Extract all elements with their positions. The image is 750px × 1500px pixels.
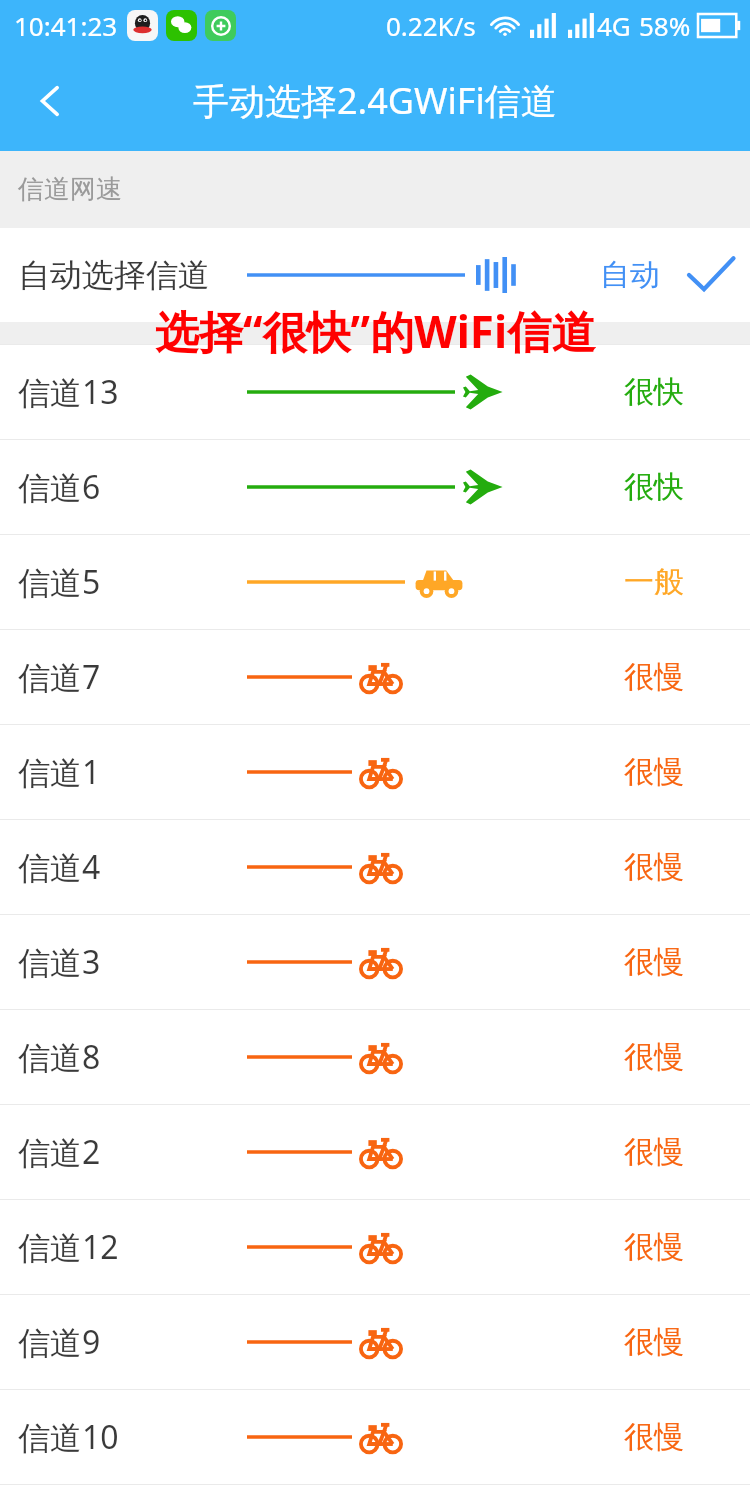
button[interactable]: 自动选择信道 bbox=[0, 228, 750, 322]
staticText: 信道3 bbox=[18, 940, 101, 984]
staticText: 很慢 bbox=[624, 1418, 684, 1456]
staticText: 很慢 bbox=[624, 658, 684, 696]
staticText: 很慢 bbox=[624, 753, 684, 791]
staticText: 很慢 bbox=[624, 1323, 684, 1361]
staticText: 4G bbox=[597, 8, 631, 43]
button[interactable]: 信道3 bbox=[0, 915, 750, 1009]
button[interactable]: 信道7 bbox=[0, 630, 750, 724]
button[interactable]: 信道8 bbox=[0, 1010, 750, 1104]
staticText: 10:41:23 bbox=[14, 8, 118, 43]
staticText: 自动选择信道 bbox=[18, 255, 210, 295]
button[interactable]: 信道2 bbox=[0, 1105, 750, 1199]
staticText: 很快 bbox=[624, 468, 684, 506]
staticText: 信道4 bbox=[18, 845, 101, 889]
button[interactable]: 信道13 bbox=[0, 345, 750, 439]
staticText: 信道12 bbox=[18, 1225, 119, 1269]
button[interactable]: 信道4 bbox=[0, 820, 750, 914]
staticText: 很慢 bbox=[624, 848, 684, 886]
button[interactable]: 信道10 bbox=[0, 1390, 750, 1484]
staticText: 选择“很快”的WiFi信道 bbox=[155, 301, 596, 359]
button[interactable]: Back bbox=[0, 50, 100, 151]
staticText: 信道13 bbox=[18, 370, 119, 414]
staticText: 很慢 bbox=[624, 1133, 684, 1171]
staticText: 58% bbox=[639, 8, 691, 43]
staticText: 信道10 bbox=[18, 1415, 119, 1459]
staticText: 信道2 bbox=[18, 1130, 101, 1174]
staticText: 很慢 bbox=[624, 1228, 684, 1266]
staticText: 信道5 bbox=[18, 560, 101, 604]
staticText: 一般 bbox=[624, 563, 684, 601]
staticText: 很快 bbox=[624, 373, 684, 411]
button[interactable]: 信道1 bbox=[0, 725, 750, 819]
staticText: 信道1 bbox=[18, 750, 101, 794]
staticText: 手动选择2.4GWiFi信道 bbox=[193, 76, 557, 125]
button[interactable]: 信道9 bbox=[0, 1295, 750, 1389]
button[interactable]: 信道12 bbox=[0, 1200, 750, 1294]
staticText: 0.22K/s bbox=[386, 8, 476, 43]
staticText: 信道网速 bbox=[18, 173, 122, 206]
button[interactable]: 信道5 bbox=[0, 535, 750, 629]
staticText: 自动 bbox=[600, 256, 660, 294]
button[interactable]: 信道6 bbox=[0, 440, 750, 534]
staticText: 信道7 bbox=[18, 655, 101, 699]
staticText: 很慢 bbox=[624, 943, 684, 981]
staticText: 信道6 bbox=[18, 465, 101, 509]
staticText: 信道9 bbox=[18, 1320, 101, 1364]
staticText: 很慢 bbox=[624, 1038, 684, 1076]
staticText: 信道8 bbox=[18, 1035, 101, 1079]
